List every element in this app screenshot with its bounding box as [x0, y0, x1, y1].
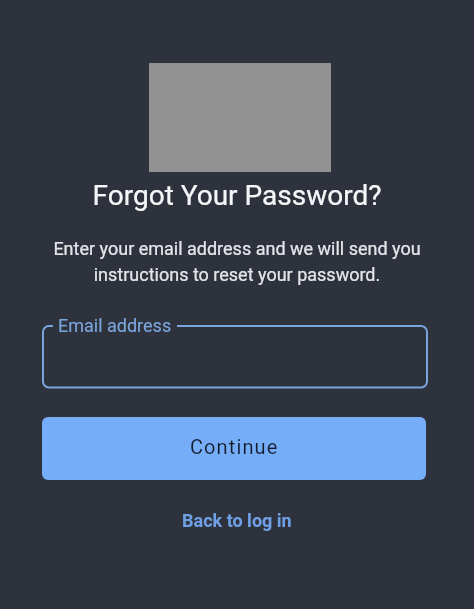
staticText: instructions to reset your password.	[0, 264, 474, 285]
staticText: Forgot Your Password?	[0, 179, 474, 212]
staticText: Enter your email address and we will sen…	[0, 238, 474, 259]
staticText: Continue	[190, 435, 279, 458]
staticText: Email address	[58, 315, 172, 336]
button[interactable]: Back to log in	[174, 505, 300, 536]
button[interactable]: Continue	[42, 417, 426, 480]
staticText: Back to log in	[182, 510, 292, 531]
button[interactable]	[42, 326, 428, 388]
